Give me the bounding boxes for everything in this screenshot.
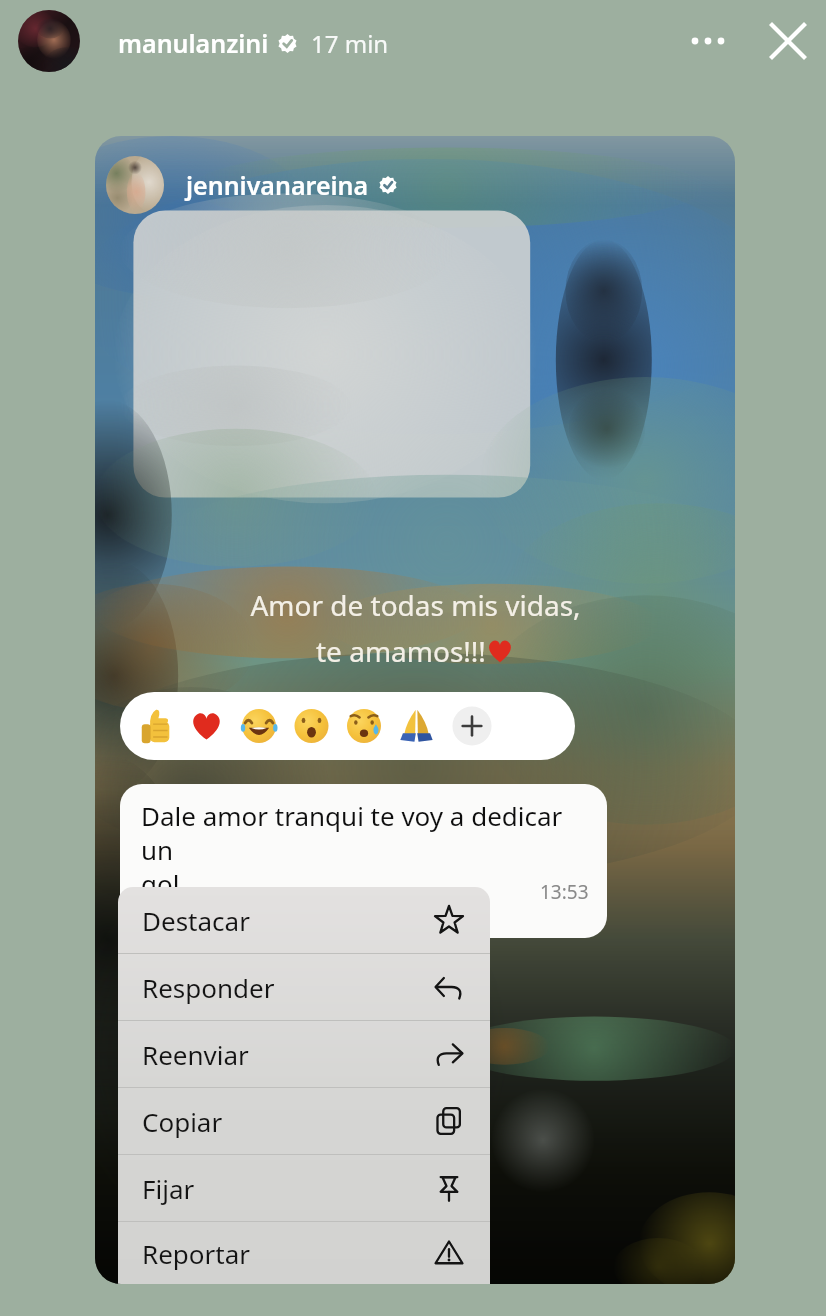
staticText: Reenviar <box>142 1037 249 1072</box>
staticText: Amor de todas mis vidas, <box>250 586 581 624</box>
button[interactable]: Copiar <box>118 1088 490 1154</box>
button[interactable]: Reenviar <box>118 1021 490 1087</box>
button[interactable]: Destacar <box>118 887 490 953</box>
button[interactable]: Profile photo <box>18 10 80 72</box>
staticText: jennivanareina <box>186 168 369 202</box>
button[interactable]: jennivanareina <box>106 152 397 218</box>
button[interactable]: manulanzini <box>118 0 389 86</box>
staticText: te amamos!!! <box>316 632 486 670</box>
staticText: Dale amor tranqui te voy a dedicar un go… <box>141 798 589 901</box>
button[interactable]: More options <box>678 11 738 71</box>
button[interactable]: Quick reactions <box>120 692 575 760</box>
button[interactable]: Reportar <box>118 1222 490 1284</box>
button[interactable]: Close <box>758 11 818 71</box>
staticText: Fijar <box>142 1171 195 1206</box>
staticText: manulanzini <box>118 26 269 60</box>
button[interactable]: Responder <box>118 954 490 1020</box>
staticText: Destacar <box>142 903 250 938</box>
staticText: Responder <box>142 970 275 1005</box>
staticText: 17 min <box>311 27 389 60</box>
button[interactable]: jennivanareina <box>95 136 735 1284</box>
staticText: Reportar <box>142 1236 251 1271</box>
staticText: Copiar <box>142 1104 223 1139</box>
button[interactable]: Fijar <box>118 1155 490 1221</box>
staticText: 13:53 <box>540 879 589 905</box>
button[interactable]: Dale amor tranqui te voy a dedicar un go… <box>120 784 607 938</box>
